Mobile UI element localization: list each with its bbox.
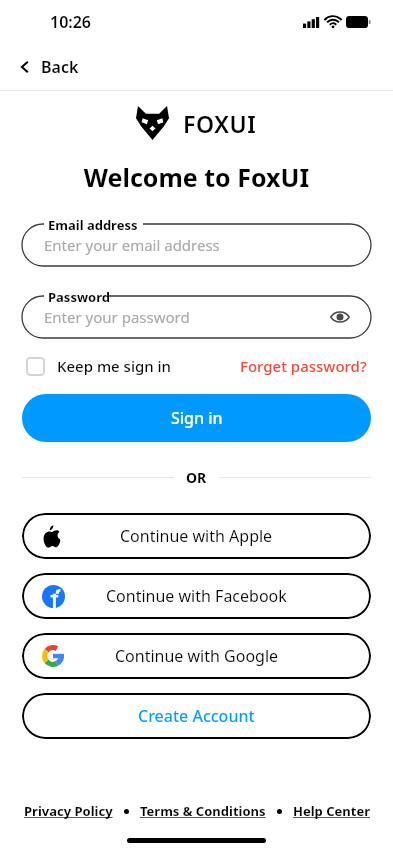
button[interactable]: Sign in bbox=[22, 394, 371, 442]
staticText: OR bbox=[186, 468, 207, 487]
staticText: Password bbox=[48, 288, 110, 306]
button[interactable]: Continue with Google bbox=[22, 633, 371, 679]
staticText: Keep me sign in bbox=[57, 356, 172, 376]
button[interactable]: Email address bbox=[22, 216, 371, 266]
staticText: FOXUI bbox=[183, 108, 257, 139]
button[interactable]: Show password bbox=[327, 304, 353, 330]
staticText: Back bbox=[41, 56, 79, 78]
staticText: Terms & Conditions bbox=[140, 802, 266, 820]
staticText: Enter your email address bbox=[44, 235, 353, 255]
staticText: Privacy Policy bbox=[24, 802, 113, 820]
button[interactable]: Terms & Conditions bbox=[140, 802, 266, 820]
staticText: Create Account bbox=[138, 705, 255, 727]
button[interactable]: Back bbox=[0, 44, 393, 89]
button[interactable]: Keep me sign in bbox=[26, 356, 172, 376]
staticText: Continue with Google bbox=[115, 645, 279, 667]
button[interactable]: Privacy Policy bbox=[24, 802, 113, 820]
staticText: Continue with Facebook bbox=[106, 585, 287, 607]
button[interactable]: Forget password? bbox=[240, 356, 367, 376]
button[interactable]: Create Account bbox=[22, 693, 371, 739]
button[interactable]: Continue with Facebook bbox=[22, 573, 371, 619]
button[interactable]: Help Center bbox=[293, 802, 370, 820]
staticText: Email address bbox=[48, 216, 138, 234]
staticText: Continue with Apple bbox=[120, 525, 273, 547]
staticText: Forget password? bbox=[240, 356, 367, 376]
button[interactable]: Continue with Apple bbox=[22, 513, 371, 559]
staticText: Sign in bbox=[171, 407, 223, 429]
staticText: 10:26 bbox=[50, 11, 92, 33]
staticText: Welcome to FoxUI bbox=[0, 160, 393, 194]
staticText: Help Center bbox=[293, 802, 370, 820]
button[interactable]: Password bbox=[22, 288, 371, 338]
staticText: Enter your password bbox=[44, 307, 327, 327]
